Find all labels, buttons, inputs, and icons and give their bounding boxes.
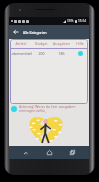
button[interactable]: Back [9, 25, 23, 39]
button[interactable]: Hilfe [78, 51, 83, 56]
button[interactable]: Lebensmittel [10, 49, 88, 57]
staticText: 15% [67, 19, 74, 23]
staticText: Lebensmittel [10, 51, 32, 56]
staticText: Hilfe [72, 41, 88, 46]
staticText: Budget [32, 41, 51, 46]
staticText: Achtung! Wenn du hier ausgaben eintragen… [19, 104, 87, 113]
staticText: 186 [51, 51, 72, 56]
staticText: Ausgaben [51, 41, 72, 46]
staticText: Artikel [10, 41, 32, 46]
staticText: Alle Kategorien [23, 30, 47, 34]
staticText: 15:14 [78, 19, 87, 23]
button[interactable]: Back [19, 146, 32, 159]
button[interactable]: Recent apps [66, 146, 79, 159]
button[interactable]: Home [43, 146, 56, 159]
staticText: 200 [32, 51, 51, 56]
